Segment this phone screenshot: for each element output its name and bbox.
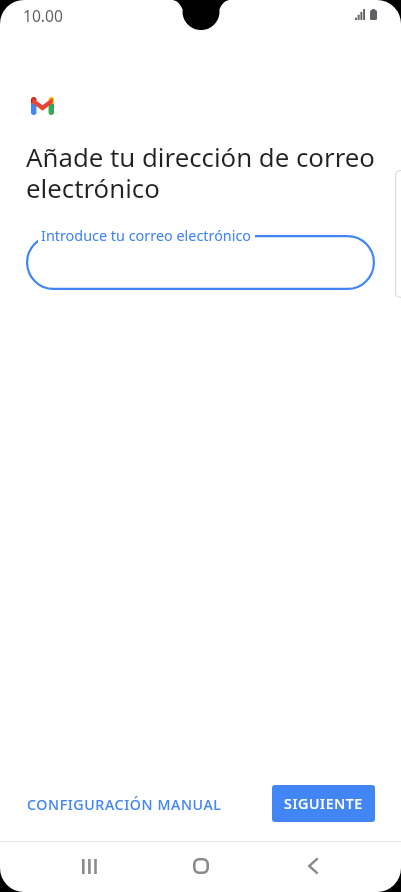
button[interactable]: Back xyxy=(285,840,341,892)
staticText: Introduce tu correo electrónico xyxy=(41,226,252,246)
button[interactable]: Recents xyxy=(61,840,117,892)
button[interactable]: CONFIGURACIÓN MANUAL xyxy=(19,789,230,820)
staticText: 10.00 xyxy=(23,5,63,26)
staticText: Añade tu dirección de correo electrónico xyxy=(26,139,386,206)
staticText: SIGUIENTE xyxy=(284,794,363,813)
staticText: CONFIGURACIÓN MANUAL xyxy=(27,795,222,814)
button[interactable]: SIGUIENTE xyxy=(272,785,375,822)
button[interactable]: Home xyxy=(173,840,229,892)
